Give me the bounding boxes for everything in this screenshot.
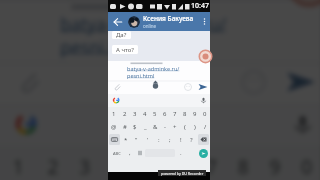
staticText: 2 [48, 155, 60, 180]
button[interactable]: @ [108, 120, 119, 133]
staticText: online [143, 23, 157, 29]
staticText: 7 [173, 110, 177, 118]
staticText: # [123, 123, 127, 131]
button[interactable]: + [170, 120, 180, 133]
button[interactable]: / [200, 120, 210, 133]
button[interactable]: ; [164, 133, 175, 146]
button[interactable]: Send [276, 60, 320, 104]
staticText: Ксения Бакуева [143, 14, 194, 23]
button[interactable]: * [121, 133, 131, 146]
staticText: 6 [163, 110, 167, 118]
button[interactable]: " [131, 133, 142, 146]
button[interactable]: $ [130, 120, 140, 133]
staticText: 0 [203, 110, 207, 118]
button[interactable]: 3 [70, 145, 101, 180]
staticText: @ [111, 123, 117, 131]
button[interactable]: & [150, 120, 160, 133]
button[interactable]: Voice input [279, 104, 320, 145]
staticText: 3 [79, 155, 92, 180]
staticText: 1 [112, 110, 116, 118]
staticText: batya-v-adminke.ru/ [127, 65, 180, 72]
staticText: 8 [183, 110, 187, 118]
button[interactable]: Google search [108, 94, 124, 107]
button[interactable]: Да? [112, 31, 131, 39]
staticText: ' [147, 136, 149, 144]
button[interactable]: Back [108, 12, 128, 31]
button[interactable]: 4 [140, 107, 150, 120]
button[interactable]: 4 [101, 145, 133, 180]
staticText: 6 [174, 155, 187, 180]
staticText: powered by DU Recorder [161, 171, 204, 176]
button[interactable]: 0 [292, 145, 320, 180]
staticText: + [173, 123, 177, 131]
button[interactable]: 5 [133, 145, 165, 180]
staticText: 4 [143, 110, 147, 118]
staticText: А что? [116, 46, 134, 54]
staticText: ? [190, 136, 193, 144]
button[interactable]: 7 [196, 145, 228, 180]
button[interactable]: ! [175, 133, 186, 146]
staticText: 5 [143, 155, 155, 180]
staticText: ABC [113, 151, 121, 156]
button[interactable]: 2 [119, 107, 130, 120]
button[interactable]: 0 [200, 107, 210, 120]
button[interactable]: Voice input [196, 94, 210, 107]
button[interactable]: # [119, 120, 130, 133]
button[interactable]: : [153, 133, 164, 146]
staticText: 7 [206, 155, 219, 180]
staticText: batya-v-adminke.ru/ [60, 12, 228, 35]
button[interactable]: 9 [190, 107, 200, 120]
button[interactable]: Attach [108, 80, 125, 94]
staticText: . [180, 149, 182, 157]
staticText: 9 [269, 155, 282, 180]
button[interactable]: Backspace [198, 134, 209, 145]
staticText: ; [169, 136, 171, 144]
staticText: $ [133, 123, 137, 131]
staticText: 2 [123, 110, 127, 118]
staticText: " [135, 136, 138, 144]
button[interactable]: ( [180, 120, 190, 133]
button[interactable]: Emoji [181, 80, 195, 94]
button[interactable]: Period [176, 146, 186, 160]
button[interactable]: 8 [228, 145, 260, 180]
staticText: pesni.html [127, 72, 155, 79]
staticText: / [204, 123, 207, 131]
button[interactable]: Send [195, 80, 210, 94]
button[interactable]: ) [190, 120, 200, 133]
staticText: ! [180, 136, 182, 144]
button[interactable]: 6 [160, 107, 170, 120]
staticText: 10:47 [191, 1, 209, 11]
staticText: Да? [116, 31, 127, 39]
button[interactable]: More options [199, 12, 210, 31]
staticText: 5 [153, 110, 157, 118]
button[interactable]: Keyboard settings [135, 146, 144, 160]
button[interactable]: Comma [125, 146, 135, 160]
button[interactable]: 1 [108, 107, 119, 120]
button[interactable]: 8 [180, 107, 190, 120]
staticText: 1 [13, 155, 25, 180]
button[interactable]: 3 [130, 107, 140, 120]
button[interactable]: Google search [0, 104, 51, 145]
staticText: ) [194, 123, 196, 131]
button[interactable]: 9 [260, 145, 292, 180]
button[interactable]: 7 [170, 107, 180, 120]
button[interactable]: 5 [150, 107, 160, 120]
button[interactable]: ' [142, 133, 153, 146]
button[interactable]: ABC [108, 146, 125, 160]
button[interactable]: - [160, 120, 170, 133]
button[interactable]: Send message [196, 146, 210, 160]
button[interactable]: 2 [35, 145, 70, 180]
staticText: & [153, 123, 158, 131]
staticText: - [164, 123, 166, 131]
button[interactable]: _ [140, 120, 150, 133]
button[interactable]: ? [186, 133, 197, 146]
staticText: 3 [133, 110, 137, 118]
staticText: 4 [111, 155, 124, 180]
button[interactable]: А что? [112, 45, 138, 54]
button[interactable]: 6 [165, 145, 196, 180]
button[interactable]: Symbols [109, 134, 120, 145]
